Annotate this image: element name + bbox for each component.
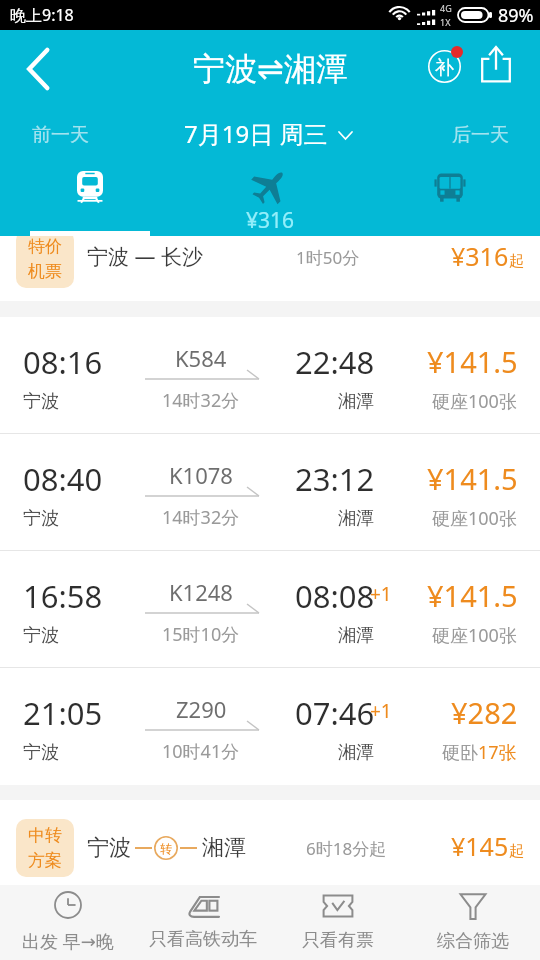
staticText: 7月19日 周三 (184, 117, 328, 150)
staticText: 只看有票 (302, 929, 374, 952)
staticText: +1 (370, 581, 392, 607)
button[interactable]: 出发 早→晚 (0, 885, 135, 960)
staticText: 宁波⇌湘潭 (193, 49, 348, 89)
staticText: 补 (435, 56, 454, 80)
staticText: 硬座100张 (432, 506, 517, 531)
staticText: 15时10分 (162, 622, 240, 647)
staticText: 宁波 (23, 390, 59, 413)
staticText: 22:48 (295, 341, 375, 383)
staticText: 出发 早→晚 (22, 929, 114, 954)
staticText: K584 (175, 343, 227, 373)
staticText: ¥316 (246, 206, 295, 235)
staticText: 湘潭 (338, 507, 374, 530)
staticText: Z290 (176, 694, 227, 724)
button[interactable]: 飞机 (180, 160, 360, 236)
button[interactable]: 16:58 (0, 551, 540, 667)
staticText: 硬座100张 (432, 623, 517, 648)
staticText: K1248 (169, 577, 233, 607)
button[interactable]: 特价 (0, 216, 540, 301)
staticText: 转 (160, 841, 172, 856)
button[interactable]: 08:40 (0, 434, 540, 550)
staticText: 宁波 (87, 834, 131, 862)
staticText: 方案 (28, 850, 62, 871)
button[interactable]: 前一天 (0, 110, 120, 160)
button[interactable]: 综合筛选 (405, 885, 540, 960)
staticText: K1078 (169, 460, 233, 490)
staticText: 综合筛选 (437, 930, 509, 953)
staticText: 1时50分 (296, 246, 360, 269)
staticText: ¥145 (451, 829, 509, 863)
staticText: 21:05 (23, 692, 103, 734)
staticText: +1 (370, 698, 392, 724)
staticText: 08:08 (295, 575, 375, 617)
staticText: ¥141.5 (427, 342, 518, 381)
button[interactable]: 21:05 (0, 668, 540, 785)
staticText: 只看高铁动车 (149, 928, 257, 951)
staticText: 23:12 (295, 458, 375, 500)
staticText: 10时41分 (162, 739, 240, 764)
button[interactable]: 后一天 (420, 110, 540, 160)
staticText: 宁波 — 长沙 (87, 242, 203, 271)
staticText: 起 (509, 252, 524, 271)
staticText: ¥316 (451, 239, 509, 273)
staticText: 14时32分 (162, 505, 240, 530)
staticText: 硬卧17张 (442, 740, 517, 765)
staticText: 机票 (28, 261, 62, 282)
staticText: ¥282 (451, 693, 518, 732)
staticText: 起 (509, 842, 524, 861)
staticText: 89% (498, 3, 534, 28)
staticText: 后一天 (452, 123, 509, 147)
staticText: ¥141.5 (427, 576, 518, 615)
staticText: 08:40 (23, 458, 103, 500)
staticText: 4G (440, 2, 452, 14)
staticText: ¥141.5 (427, 459, 518, 498)
staticText: 湘潭 (338, 624, 374, 647)
staticText: 宁波 (23, 741, 59, 764)
staticText: 前一天 (32, 123, 89, 147)
button[interactable]: 只看有票 (270, 885, 405, 960)
button[interactable]: 只看高铁动车 (135, 885, 270, 960)
staticText: 晚上9:18 (10, 4, 74, 26)
staticText: 08:16 (23, 341, 103, 383)
button[interactable]: 汽车 (360, 160, 540, 236)
staticText: 中转 (28, 825, 62, 846)
button[interactable]: 火车 (0, 160, 180, 236)
staticText: 硬座100张 (432, 389, 517, 414)
staticText: 湘潭 (202, 834, 246, 862)
staticText: 1X (440, 16, 451, 28)
staticText: 湘潭 (338, 741, 374, 764)
button[interactable]: Back (10, 41, 66, 97)
staticText: 特价 (28, 236, 62, 257)
button[interactable]: 08:16 (0, 317, 540, 433)
staticText: 6时18分起 (306, 837, 387, 860)
button[interactable]: 补票提醒 (418, 40, 470, 92)
staticText: 16:58 (23, 575, 103, 617)
staticText: 宁波 (23, 507, 59, 530)
button[interactable]: Share (470, 38, 522, 90)
button[interactable]: 中转 (0, 800, 540, 885)
staticText: 湘潭 (338, 390, 374, 413)
button[interactable]: 7月19日 周三 (184, 108, 352, 158)
staticText: 14时32分 (162, 388, 240, 413)
staticText: 宁波 (23, 624, 59, 647)
staticText: 07:46 (295, 692, 375, 734)
